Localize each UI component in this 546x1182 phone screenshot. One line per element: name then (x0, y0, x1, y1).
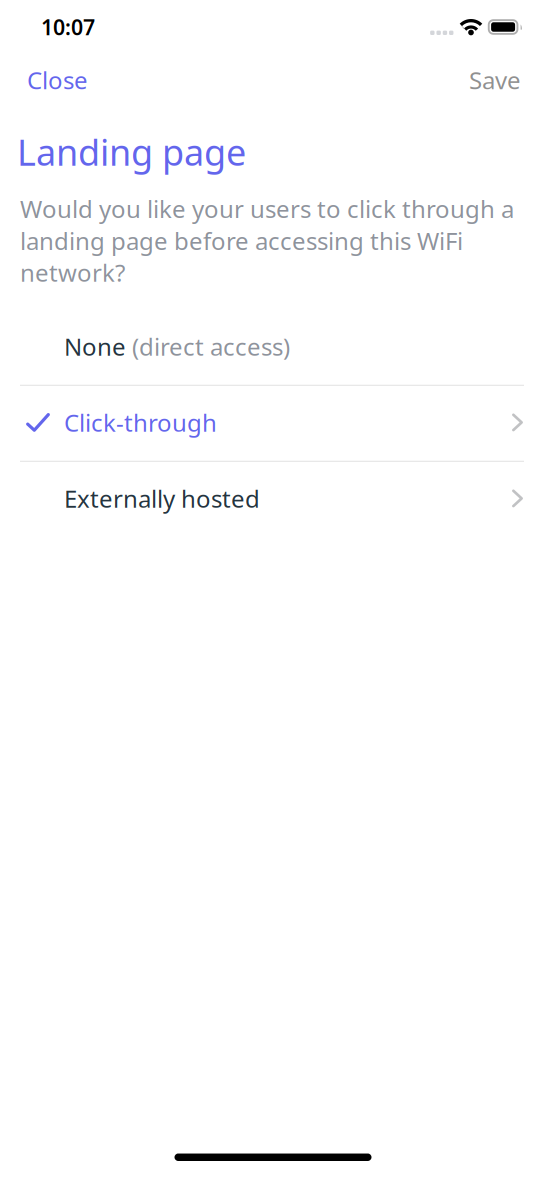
staticText: None (64, 330, 126, 362)
button[interactable]: Close (0, 47, 104, 111)
staticText: Externally hosted (64, 482, 260, 514)
staticText: 10:07 (41, 13, 95, 41)
staticText: Would you like your users to click throu… (20, 193, 514, 288)
button[interactable]: Externally hosted (0, 460, 546, 536)
staticText: Close (27, 64, 88, 96)
button[interactable]: Click-through (0, 384, 546, 460)
button[interactable]: None (direct access) (0, 308, 546, 384)
staticText: (direct access) (126, 330, 290, 362)
staticText: Click-through (64, 406, 217, 438)
staticText: Save (469, 64, 521, 96)
button[interactable]: Save (453, 47, 546, 111)
staticText: Landing page (17, 128, 246, 176)
